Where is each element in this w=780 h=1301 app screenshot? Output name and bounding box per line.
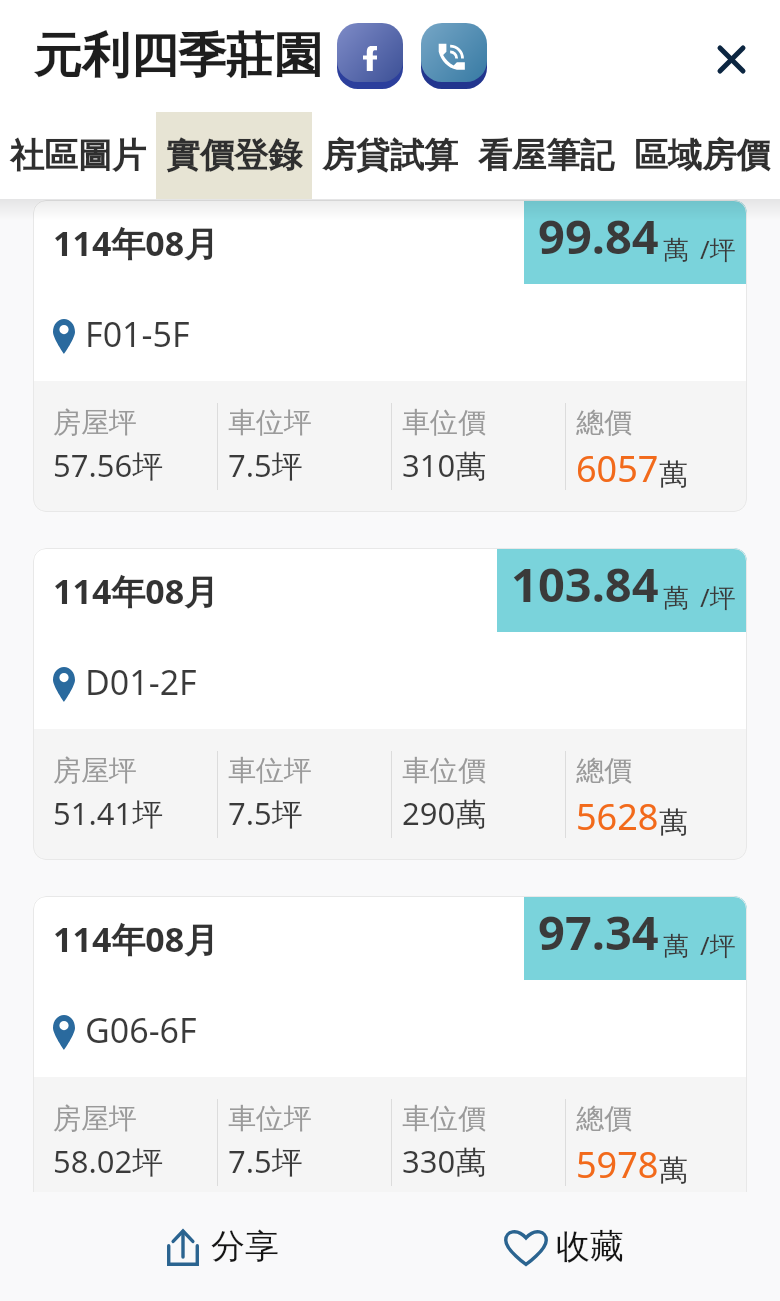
staticText: /坪 [700,579,736,615]
staticText: 車位坪 [228,753,312,788]
button[interactable]: 收藏 [390,1192,780,1301]
staticText: 7.5坪 [228,792,303,834]
staticText: 330萬 [402,1140,487,1182]
staticText: 6057 [576,444,659,493]
button[interactable]: Call [421,23,487,82]
staticText: 房屋坪 [53,1101,137,1136]
staticText: 310萬 [402,444,487,486]
staticText: 5978 [576,1140,659,1189]
button[interactable]: 分享 [0,1192,390,1301]
staticText: 看屋筆記 [478,134,614,177]
staticText: 房屋坪 [53,753,137,788]
staticText: G06-6F [85,1007,197,1053]
staticText: 實價登錄 [166,134,302,177]
staticText: 萬 [659,804,688,841]
button[interactable]: 99.84 [33,200,747,512]
staticText: F01-5F [85,311,190,357]
staticText: 收藏 [556,1225,624,1268]
staticText: 114年08月 [53,220,219,266]
button[interactable]: 97.34 [33,896,747,1208]
staticText: 車位價 [402,405,486,440]
staticText: 57.56坪 [53,444,164,486]
staticText: /坪 [700,231,736,267]
staticText: 車位價 [402,1101,486,1136]
staticText: 萬 [663,234,689,267]
staticText: 車位坪 [228,405,312,440]
staticText: 58.02坪 [53,1140,164,1182]
staticText: 房屋坪 [53,405,137,440]
staticText: 114年08月 [53,916,219,962]
button[interactable]: 房貸試算 [312,112,468,199]
staticText: 103.84 [511,552,659,616]
button[interactable]: Close [696,24,766,94]
staticText: 車位坪 [228,1101,312,1136]
button[interactable]: 區域房價 [624,112,780,199]
staticText: 萬 [659,456,688,493]
staticText: 分享 [211,1225,279,1268]
staticText: 萬 [659,1152,688,1189]
button[interactable]: 看屋筆記 [468,112,624,199]
staticText: 97.34 [538,900,659,964]
staticText: 99.84 [538,204,659,268]
staticText: D01-2F [85,659,197,705]
staticText: 社區圖片 [10,134,146,177]
button[interactable]: Facebook [337,23,403,82]
staticText: 290萬 [402,792,487,834]
staticText: 元利四季莊園 [34,26,322,86]
staticText: 7.5坪 [228,1140,303,1182]
staticText: /坪 [700,927,736,963]
staticText: 51.41坪 [53,792,164,834]
staticText: 總價 [576,1101,632,1136]
staticText: 萬 [663,582,689,615]
button[interactable]: 社區圖片 [0,112,156,199]
button[interactable]: 實價登錄 [156,112,312,199]
staticText: 總價 [576,753,632,788]
button[interactable]: 103.84 [33,548,747,860]
staticText: 總價 [576,405,632,440]
staticText: 萬 [663,930,689,963]
staticText: 7.5坪 [228,444,303,486]
staticText: 房貸試算 [322,134,458,177]
staticText: 114年08月 [53,568,219,614]
staticText: 5628 [576,792,659,841]
staticText: 區域房價 [634,134,770,177]
staticText: 車位價 [402,753,486,788]
